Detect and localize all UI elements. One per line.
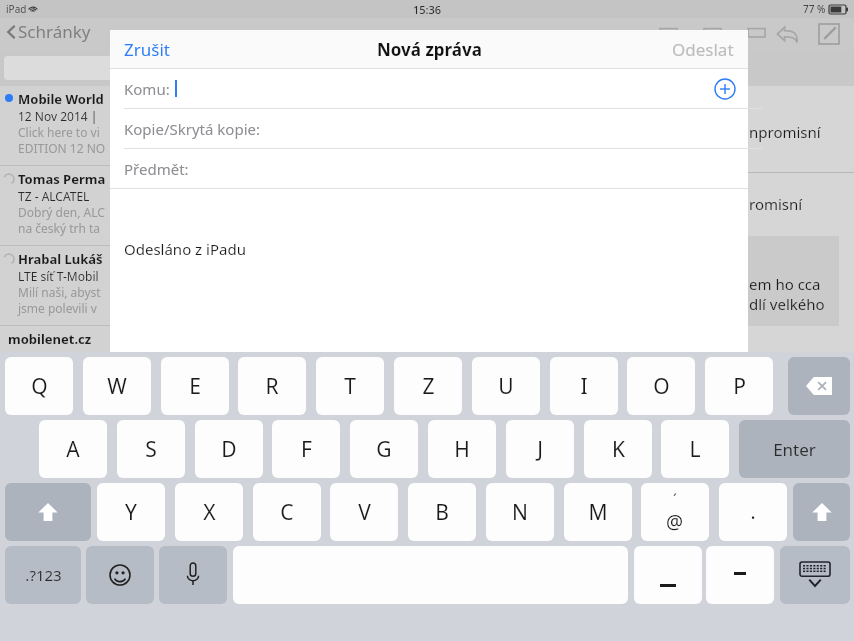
button[interactable]: X — [175, 483, 243, 541]
button[interactable]: G — [350, 420, 418, 478]
button[interactable]: C — [253, 483, 321, 541]
staticText: @ — [666, 509, 684, 535]
button[interactable]: Y — [97, 483, 165, 541]
staticText: G — [376, 435, 392, 464]
button[interactable]: A — [39, 420, 107, 478]
button[interactable]: Odeslat — [672, 38, 734, 61]
staticText: Z — [422, 372, 435, 401]
staticText: S — [145, 435, 157, 464]
button[interactable]: N — [486, 483, 554, 541]
staticText: C — [280, 498, 294, 527]
button[interactable]: Q — [5, 357, 73, 415]
staticText: N — [512, 498, 528, 527]
staticText: A — [66, 435, 80, 464]
button[interactable]: B — [408, 483, 476, 541]
button[interactable]: R — [238, 357, 306, 415]
button[interactable]: Z — [394, 357, 462, 415]
button[interactable]: E — [161, 357, 229, 415]
button[interactable]: I — [550, 357, 618, 415]
button[interactable]: Folder — [658, 22, 680, 44]
staticText: em ho cca — [749, 274, 821, 294]
button[interactable]: Dictation — [159, 546, 227, 604]
staticText: . — [750, 499, 756, 525]
staticText: Dobrý den, ALC — [18, 204, 105, 220]
button[interactable]: L — [661, 420, 729, 478]
staticText: Click here to vi — [18, 124, 100, 140]
button[interactable]: W — [83, 357, 151, 415]
staticText: iPad — [6, 2, 27, 16]
button[interactable]: .?123 — [5, 546, 81, 604]
button[interactable]: Předmět: — [110, 149, 748, 188]
staticText: K — [612, 435, 625, 464]
button[interactable]: Shift — [793, 483, 850, 541]
button[interactable]: T — [316, 357, 384, 415]
staticText: H — [454, 435, 470, 464]
button[interactable]: J — [506, 420, 574, 478]
button[interactable]: F — [272, 420, 340, 478]
staticText: L — [689, 435, 701, 464]
staticText: Tomas Perma — [18, 170, 106, 188]
button[interactable]: H — [428, 420, 496, 478]
staticText: E — [189, 372, 201, 401]
staticText: dlí velkého — [749, 294, 825, 314]
button[interactable]: V — [330, 483, 398, 541]
staticText: M — [588, 498, 608, 527]
staticText: Y — [125, 498, 137, 527]
button[interactable]: Shift — [5, 483, 91, 541]
staticText: V — [358, 498, 371, 527]
button[interactable]: Reply — [775, 22, 799, 46]
button[interactable]: D — [195, 420, 263, 478]
button[interactable]: Folder — [702, 22, 724, 44]
staticText: Q — [31, 372, 48, 401]
button[interactable]: Schránky — [4, 20, 91, 43]
button[interactable]: Folder — [746, 22, 768, 44]
staticText: Nová zpráva — [377, 38, 482, 61]
button[interactable]: P — [705, 357, 773, 415]
staticText: ´ — [673, 490, 677, 509]
button[interactable]: M — [564, 483, 632, 541]
staticText: F — [301, 435, 312, 464]
staticText: X — [203, 498, 216, 527]
staticText: npromisní — [749, 122, 821, 142]
staticText: jsme polevili v — [18, 300, 97, 316]
button[interactable] — [634, 546, 702, 604]
button[interactable]: Emoji — [86, 546, 154, 604]
button[interactable]: Kopie/Skrytá kopie: — [110, 109, 748, 148]
staticText: Komu: — [124, 79, 170, 99]
staticText: LTE síť T-Mobil — [18, 268, 99, 284]
staticText: Odesláno z iPadu — [124, 239, 246, 259]
staticText: romisní — [749, 194, 803, 214]
staticText: R — [265, 372, 279, 401]
button[interactable]: . — [719, 483, 787, 541]
button[interactable] — [4, 56, 154, 80]
staticText: Hrabal Lukáš — [18, 250, 103, 268]
staticText: U — [498, 372, 514, 401]
button[interactable] — [706, 546, 774, 604]
button[interactable]: K — [584, 420, 652, 478]
staticText: .?123 — [25, 565, 62, 585]
button[interactable]: Zrušit — [124, 38, 170, 61]
staticText: B — [435, 498, 449, 527]
staticText: J — [537, 435, 543, 464]
button[interactable]: Enter — [739, 420, 850, 478]
staticText: Schránky — [18, 20, 91, 43]
button[interactable]: U — [472, 357, 540, 415]
staticText: P — [733, 372, 746, 401]
staticText: Milí naši, abyst — [18, 284, 101, 300]
button[interactable]: Add contact — [714, 78, 736, 100]
staticText: O — [653, 372, 670, 401]
button[interactable]: Odesláno z iPadu — [110, 189, 748, 352]
staticText: I — [580, 372, 588, 401]
button[interactable]: Backspace — [788, 357, 850, 415]
staticText: T — [344, 372, 356, 401]
staticText: Zrušit — [124, 38, 170, 61]
button[interactable]: O — [627, 357, 695, 415]
button[interactable]: S — [117, 420, 185, 478]
staticText: EDITION 12 NO — [18, 140, 106, 156]
staticText: 15:36 — [413, 2, 442, 17]
button[interactable]: Compose — [817, 22, 841, 46]
button[interactable]: Hide keyboard — [780, 546, 850, 604]
button[interactable]: ´ — [641, 483, 709, 541]
staticText: mobilenet.cz — [8, 330, 92, 348]
